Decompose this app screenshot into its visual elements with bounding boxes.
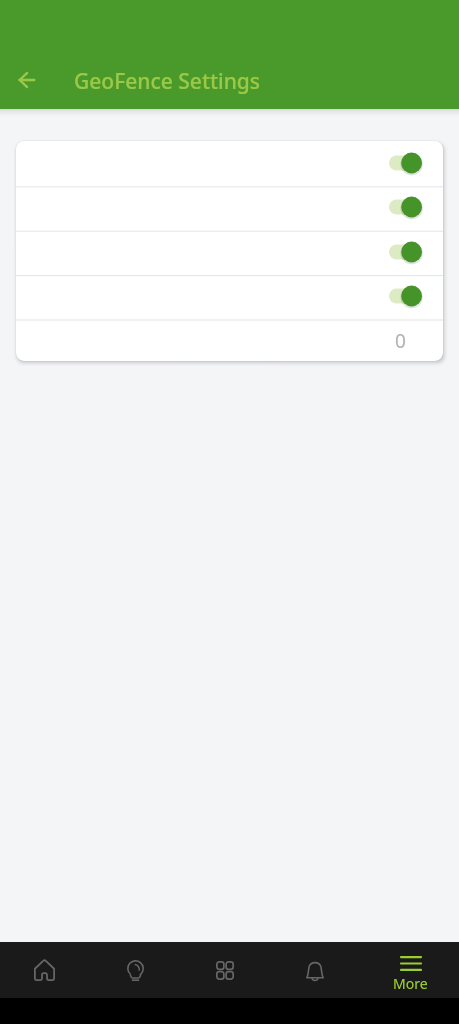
staticText: More — [393, 974, 428, 993]
button[interactable]: 0 — [16, 319, 443, 361]
button[interactable]: Alerts — [279, 943, 351, 999]
staticText: 0 — [395, 328, 406, 354]
button[interactable] — [16, 141, 443, 185]
button[interactable]: Tips — [99, 942, 171, 998]
button[interactable]: Apps — [189, 942, 261, 998]
button[interactable]: Home — [8, 942, 80, 998]
button[interactable]: Back — [3, 56, 51, 104]
button[interactable] — [16, 230, 443, 274]
button[interactable]: More — [374, 942, 446, 998]
button[interactable] — [16, 185, 443, 229]
button[interactable] — [16, 274, 443, 318]
staticText: GeoFence Settings — [74, 67, 261, 96]
